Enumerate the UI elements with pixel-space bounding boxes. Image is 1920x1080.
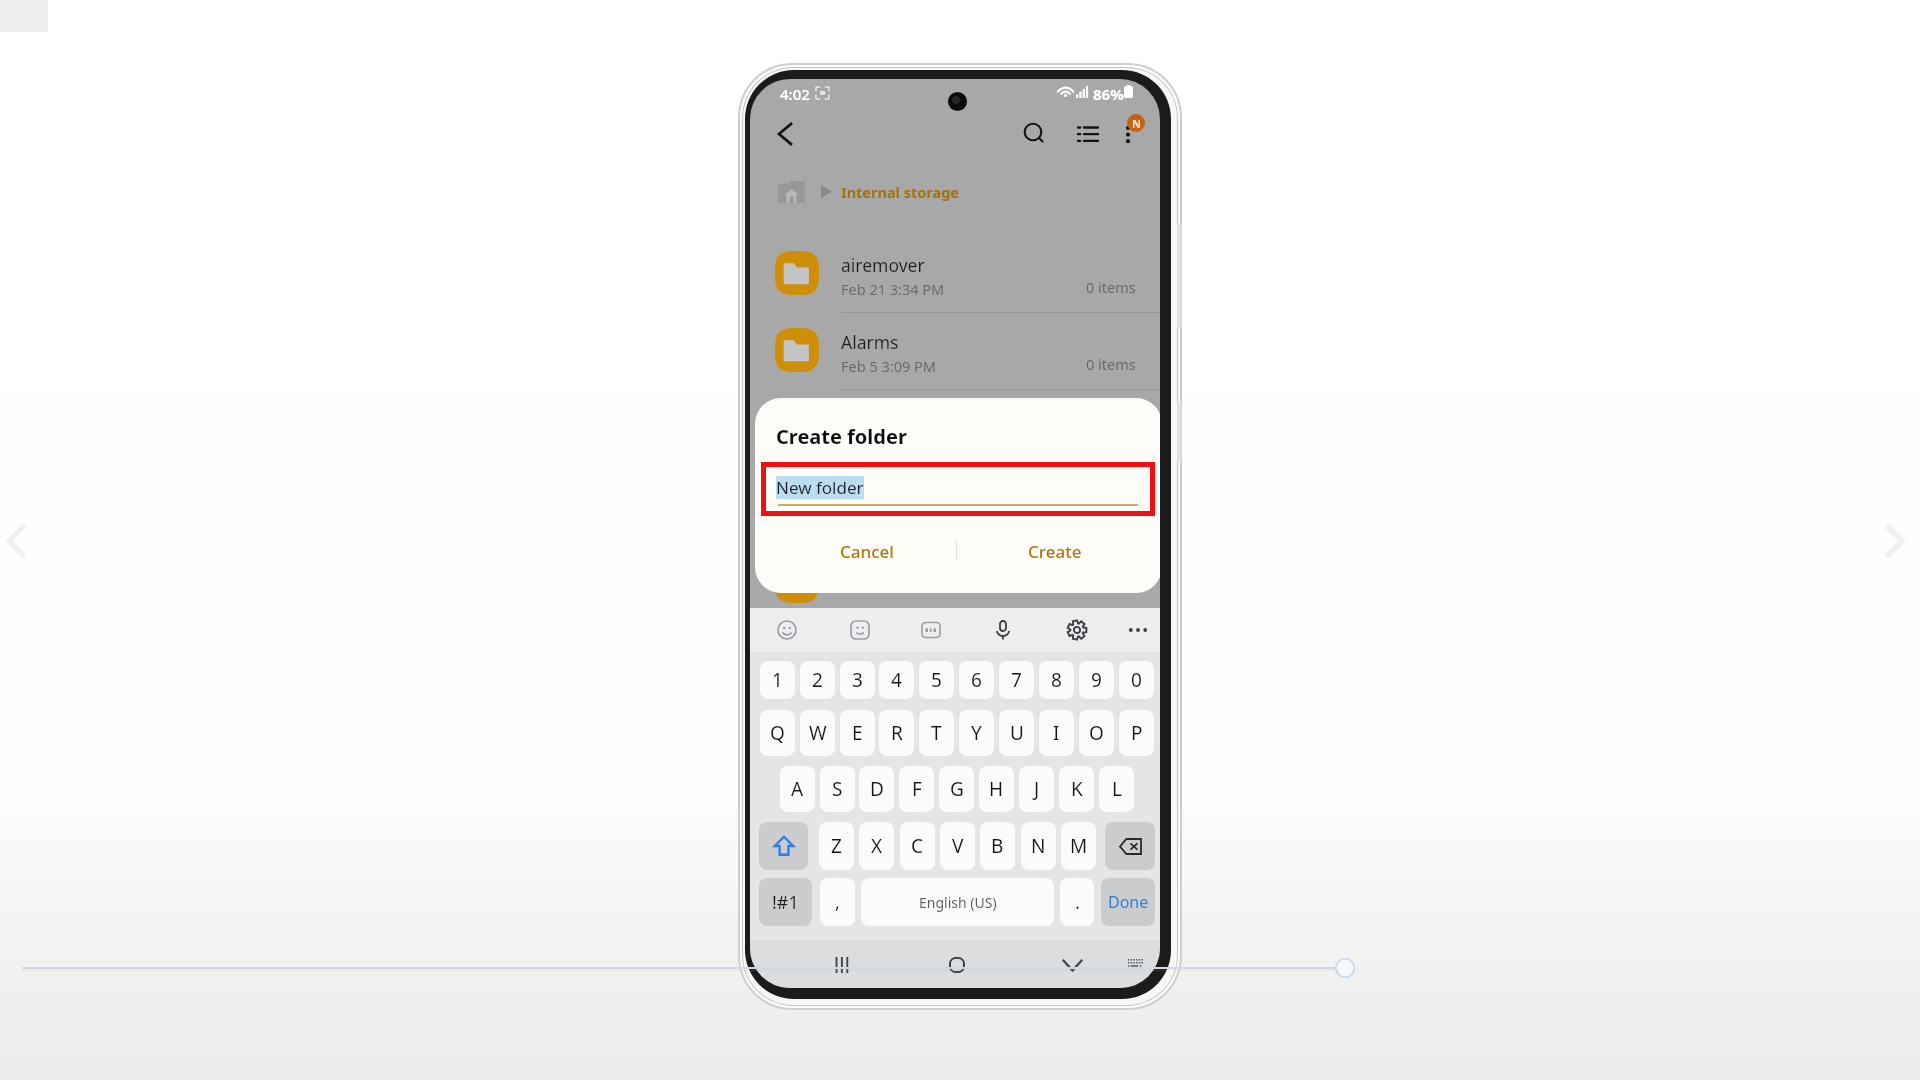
button[interactable]: 6 [959,661,994,699]
button[interactable]: 8 [1039,661,1074,699]
staticText: J [1034,776,1040,802]
button[interactable] [750,544,1160,621]
staticText: E [852,720,863,746]
staticText: T [931,720,942,746]
button[interactable]: N [1021,822,1056,870]
staticText: Internal storage [841,182,960,202]
button[interactable]: Back [761,110,809,158]
button[interactable]: Voice input [985,612,1021,648]
button[interactable]: Cancel [781,528,952,574]
staticText: , [835,890,840,915]
button[interactable]: View as list [1064,110,1112,158]
button[interactable]: Change keyboard [1116,945,1156,985]
button[interactable]: Emoji [769,612,805,648]
staticText: . [1075,890,1080,915]
button[interactable]: K [1059,766,1094,812]
button[interactable]: O [1079,710,1114,756]
staticText: 1 [772,667,783,693]
button[interactable]: 2 [800,661,835,699]
staticText: O [1089,720,1104,746]
button[interactable]: 5 [919,661,954,699]
button[interactable]: Home [935,945,979,985]
staticText: Feb 21 3:34 PM [841,279,945,299]
staticText: L [1112,776,1122,802]
button[interactable]: Y [959,710,994,756]
button[interactable]: R [879,710,914,756]
button[interactable]: D [859,766,894,812]
staticText: Feb 5 3:09 PM [841,356,936,376]
button[interactable]: U [999,710,1034,756]
button[interactable]: Folder name text field [776,466,1138,508]
button[interactable]: 0 [1119,661,1154,699]
staticText: 0 [1131,667,1142,693]
button[interactable]: Hide keyboard [1050,945,1094,985]
staticText: S [832,776,843,802]
staticText: B [991,833,1004,859]
button[interactable]: DCIM [750,467,1160,544]
staticText: Alarms [841,330,899,354]
button[interactable]: Backspace [1105,822,1155,870]
button[interactable]: G [939,766,974,812]
button[interactable]: B [980,822,1015,870]
button[interactable]: Recent apps [819,945,864,985]
staticText: 5 [931,667,942,693]
staticText: C [911,833,924,859]
staticText: !#1 [772,890,799,915]
button[interactable]: , [820,878,855,926]
button[interactable]: Create [962,528,1148,574]
button[interactable]: Internal storage [750,156,1160,222]
button[interactable]: L [1099,766,1134,812]
button[interactable]: 4 [879,661,914,699]
button[interactable]: Android [750,390,1160,467]
staticText: 6 [971,667,982,693]
button[interactable]: V [940,822,975,870]
button[interactable]: 7 [999,661,1034,699]
staticText: Q [770,720,785,746]
button[interactable]: English (US) [861,878,1054,926]
button[interactable]: Z [819,822,854,870]
button[interactable]: Q [760,710,795,756]
button[interactable]: . [1060,878,1094,926]
button[interactable]: airemover [750,236,1160,313]
button[interactable]: 3 [840,661,875,699]
button[interactable]: F [899,766,934,812]
button[interactable]: Done [1101,878,1155,926]
staticText: English (US) [919,893,997,912]
button[interactable]: 1 [760,661,795,699]
staticText: R [891,720,903,746]
staticText: New folder [776,476,864,499]
staticText: K [1071,776,1083,802]
button[interactable]: X [859,822,894,870]
button[interactable]: A [780,766,815,812]
button[interactable]: S [820,766,855,812]
button[interactable]: J [1019,766,1054,812]
button[interactable]: Stickers [842,612,878,648]
staticText: X [871,833,883,859]
staticText: I [1053,720,1060,746]
staticText: 8 [1051,667,1062,693]
button[interactable]: Shift [759,822,808,870]
button[interactable]: W [800,710,835,756]
button[interactable]: Alarms [750,313,1160,390]
button[interactable] [750,621,1160,698]
button[interactable]: GIF [913,612,949,648]
button[interactable]: I [1039,710,1074,756]
button[interactable]: E [840,710,875,756]
button[interactable]: C [900,822,935,870]
button[interactable]: Keyboard settings [1059,612,1095,648]
button[interactable]: Search [1011,110,1059,158]
button[interactable]: P [1119,710,1154,756]
button[interactable]: 9 [1079,661,1114,699]
button[interactable]: T [919,710,954,756]
button[interactable]: H [979,766,1014,812]
staticText: H [989,776,1004,802]
staticText: N [1132,116,1141,131]
button[interactable]: !#1 [759,878,812,926]
button[interactable]: More options [1104,110,1152,158]
button[interactable]: More options [1120,612,1156,648]
staticText: 0 items [1086,508,1136,528]
staticText: 3 [852,667,863,693]
button[interactable]: M [1061,822,1096,870]
staticText: V [952,833,964,859]
